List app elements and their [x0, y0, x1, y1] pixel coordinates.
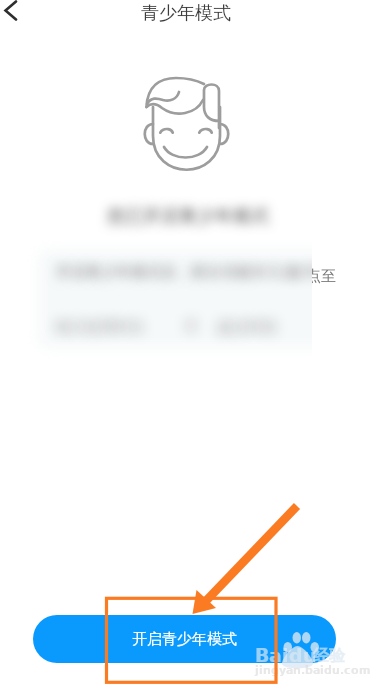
button[interactable]: Back [0, 0, 32, 32]
button[interactable]: 开启青少年模式 [33, 615, 336, 663]
staticText: 青少年模式 [141, 2, 231, 25]
staticText: 开启青少年模式 [132, 630, 237, 649]
